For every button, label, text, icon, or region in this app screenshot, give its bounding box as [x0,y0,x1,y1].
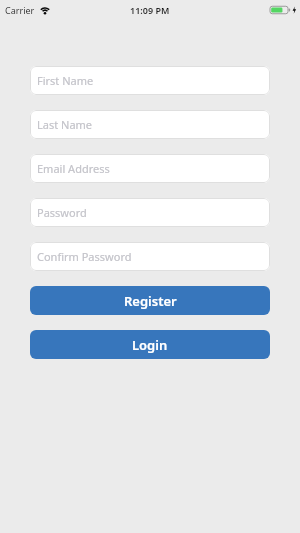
button[interactable]: Last Name [30,110,270,139]
staticText: Confirm Password [37,249,132,264]
staticText: Login [132,336,168,354]
button[interactable]: First Name [30,66,270,95]
staticText: Last Name [37,117,93,132]
staticText: Carrier [5,4,35,16]
staticText: Register [124,292,177,310]
staticText: First Name [37,73,94,88]
staticText: Password [37,205,87,220]
button[interactable]: Register [30,286,270,315]
staticText: 11:09 PM [130,4,170,16]
button[interactable]: Email Address [30,154,270,183]
button[interactable]: Confirm Password [30,242,270,271]
button[interactable]: Login [30,330,270,359]
staticText: Email Address [37,161,110,176]
button[interactable]: Password [30,198,270,227]
